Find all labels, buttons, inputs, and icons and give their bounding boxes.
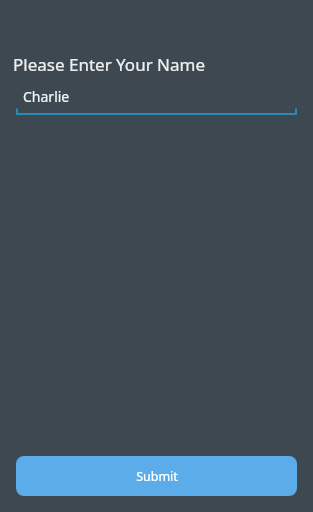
button[interactable]: Charlie: [16, 86, 297, 115]
staticText: Charlie: [23, 87, 70, 106]
staticText: Submit: [136, 468, 178, 485]
staticText: Please Enter Your Name: [13, 53, 206, 76]
button[interactable]: Submit: [16, 456, 297, 496]
